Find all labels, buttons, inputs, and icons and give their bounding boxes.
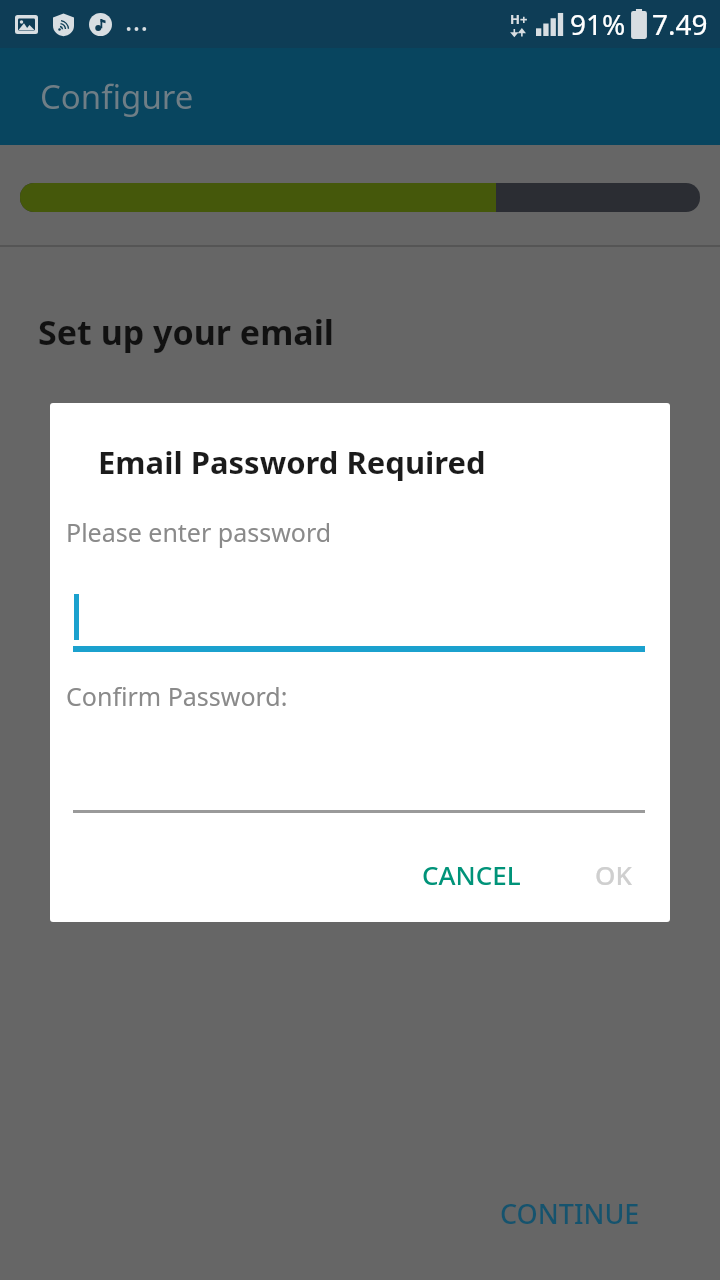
button[interactable]: CONTINUE	[490, 1185, 650, 1242]
staticText: 7.49	[652, 5, 708, 43]
staticText: 91%	[570, 5, 626, 43]
button[interactable]: CANCEL	[404, 843, 539, 906]
staticText: Set up your email	[38, 309, 334, 355]
staticText: Configure	[40, 74, 194, 119]
button[interactable]	[73, 751, 645, 813]
button[interactable]	[73, 584, 645, 652]
staticText: CONTINUE	[500, 1195, 640, 1232]
staticText: Confirm Password:	[66, 679, 288, 713]
staticText: H+	[510, 10, 528, 28]
button[interactable]: OK	[577, 843, 650, 906]
staticText: Please enter password	[66, 515, 332, 549]
staticText: Email Password Required	[98, 441, 486, 483]
staticText: CANCEL	[422, 857, 521, 892]
staticText: OK	[595, 857, 632, 892]
